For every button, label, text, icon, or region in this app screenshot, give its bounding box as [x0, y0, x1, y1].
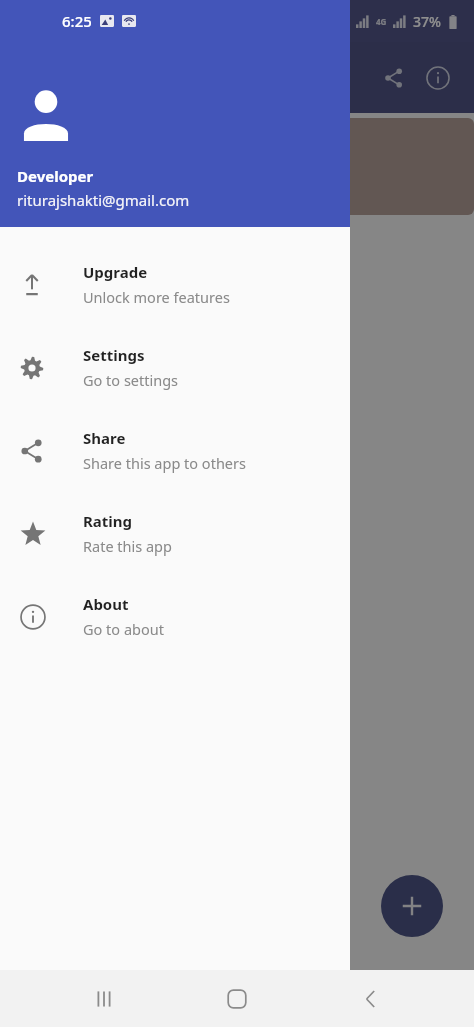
staticText: Go to about — [83, 619, 164, 639]
staticText: 4G — [376, 16, 387, 27]
button[interactable]: Recent apps — [74, 970, 134, 1027]
button[interactable]: About — [416, 56, 460, 100]
button[interactable]: Rating — [0, 492, 350, 575]
staticText: About — [83, 594, 129, 614]
button[interactable]: Folders — [14, 947, 151, 995]
button[interactable]: Back — [341, 970, 401, 1027]
staticText: Upgrade — [83, 262, 148, 282]
button[interactable] — [18, 118, 474, 215]
staticText: Developer — [17, 166, 94, 186]
staticText: Folders — [72, 960, 129, 982]
button[interactable]: Upgrade — [0, 243, 350, 326]
staticText: Settings — [83, 345, 145, 365]
staticText: Share — [83, 428, 126, 448]
staticText: Rating — [83, 511, 133, 531]
staticText: Share this app to others — [83, 453, 246, 473]
staticText: Go to settings — [83, 370, 179, 390]
staticText: riturajshakti@gmail.com — [17, 190, 190, 210]
button[interactable]: Add — [381, 875, 443, 937]
button[interactable]: Home — [207, 970, 267, 1027]
staticText: Unlock more features — [83, 287, 230, 307]
button[interactable]: About — [0, 575, 350, 658]
button[interactable]: Share — [372, 56, 416, 100]
button[interactable]: Settings — [0, 326, 350, 409]
staticText: 37% — [413, 12, 441, 31]
staticText: Rate this app — [83, 536, 172, 556]
staticText: 6:25 — [62, 11, 92, 31]
button[interactable]: Share — [0, 409, 350, 492]
